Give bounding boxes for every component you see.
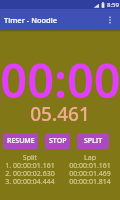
staticText: 3. 00:00:04.444 bbox=[0, 177, 60, 185]
staticText: 2. 00:00:02.630 bbox=[0, 169, 60, 177]
staticText: Split bbox=[0, 153, 60, 161]
staticText: Timer - Noodle bbox=[4, 15, 58, 25]
staticText: STOP bbox=[49, 136, 67, 146]
staticText: 00:00:01.161 bbox=[60, 161, 120, 169]
staticText: SPLIT bbox=[84, 136, 103, 146]
button[interactable]: More options bbox=[99, 9, 120, 30]
staticText: Lap bbox=[60, 153, 120, 161]
staticText: RESUME bbox=[7, 136, 35, 146]
button[interactable]: STOP bbox=[45, 133, 70, 149]
staticText: 00:00:01.814 bbox=[60, 177, 120, 185]
staticText: 8:59 bbox=[107, 1, 119, 9]
staticText: 1. 00:00:01.161 bbox=[0, 161, 60, 169]
staticText: 00:00:01.469 bbox=[60, 169, 120, 177]
staticText: 05.461 bbox=[30, 101, 90, 123]
button[interactable]: SPLIT bbox=[77, 133, 109, 149]
button[interactable]: RESUME bbox=[3, 133, 38, 149]
staticText: 00:00 bbox=[0, 48, 120, 104]
